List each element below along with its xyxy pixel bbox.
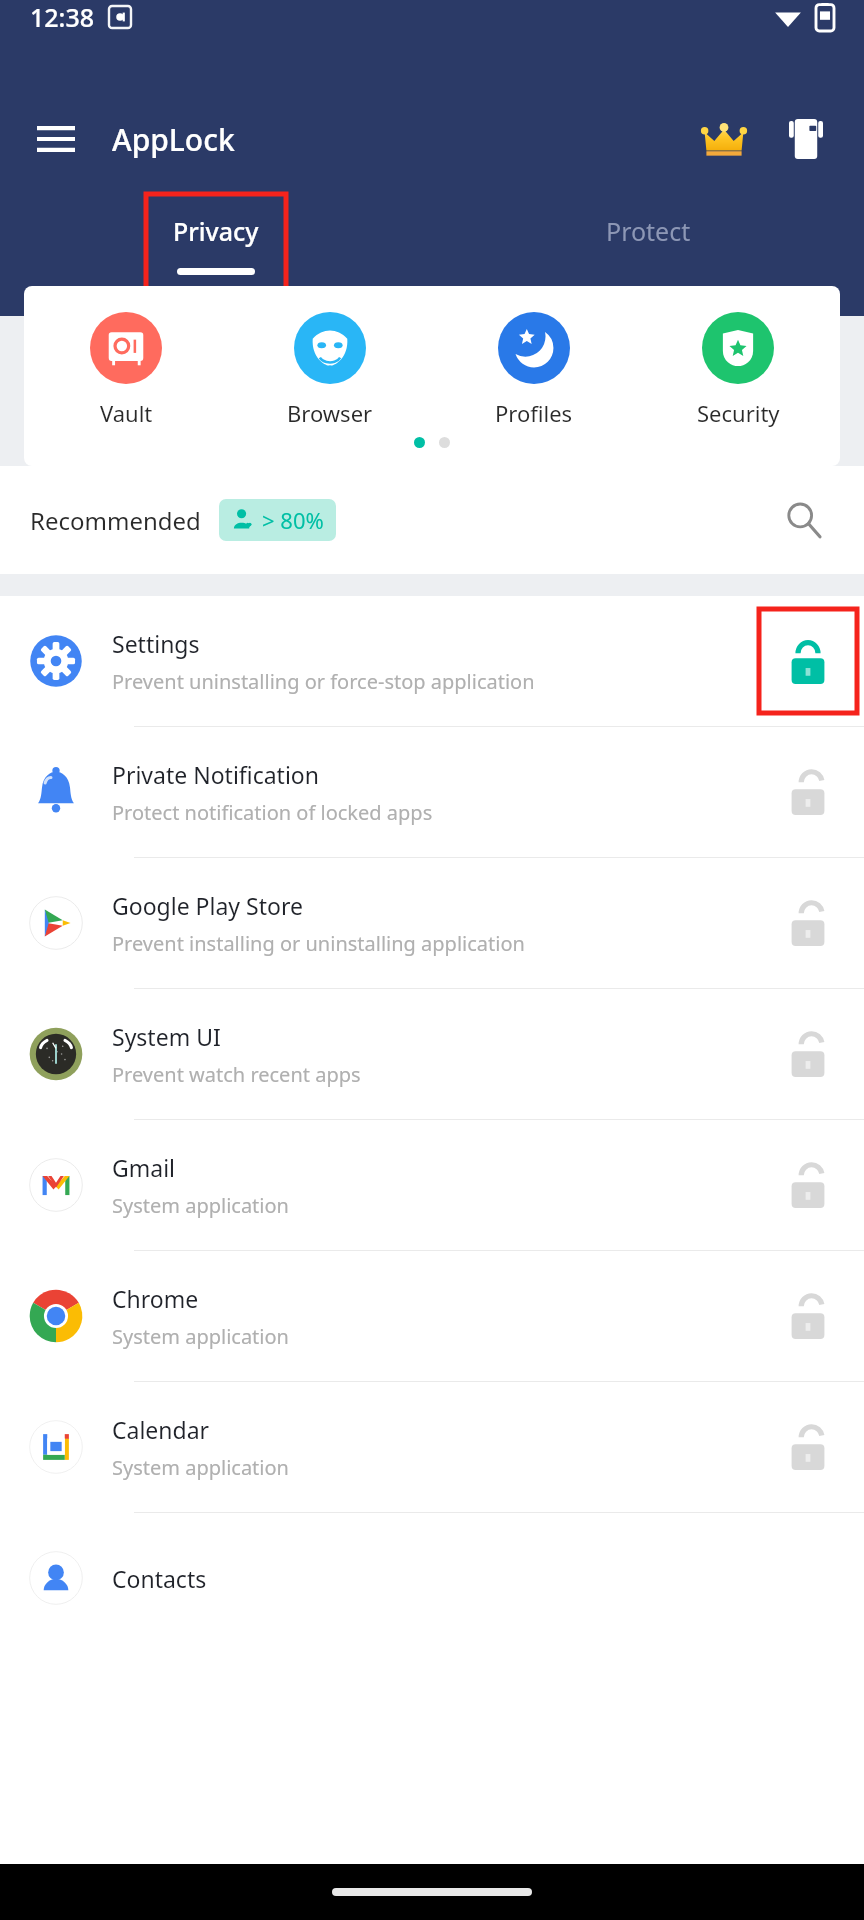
- button[interactable]: Privacy: [0, 194, 432, 316]
- staticText: Vault: [100, 398, 153, 428]
- staticText: Protect notification of locked apps: [112, 799, 433, 826]
- staticText: 12:38: [30, 0, 95, 34]
- staticText: Private Notification: [112, 759, 319, 790]
- staticText: Browser: [287, 398, 373, 428]
- staticText: Profiles: [495, 398, 573, 428]
- staticText: Prevent installing or uninstalling appli…: [112, 930, 525, 957]
- staticText: Prevent watch recent apps: [112, 1061, 361, 1088]
- button[interactable]: System UI: [0, 989, 864, 1119]
- staticText: Calendar: [112, 1414, 210, 1445]
- button[interactable]: Unlocked, tap to lock: [752, 727, 864, 857]
- button[interactable]: Google Play Store: [0, 858, 864, 988]
- staticText: Settings: [112, 628, 200, 659]
- button[interactable]: Unlocked, tap to lock: [752, 1382, 864, 1512]
- staticText: AppLock: [112, 119, 235, 160]
- button[interactable]: Unlocked, tap to lock: [752, 1120, 864, 1250]
- button[interactable]: Themes: [778, 111, 834, 167]
- button[interactable]: Security: [636, 308, 840, 432]
- button[interactable]: Gmail: [0, 1120, 864, 1250]
- button[interactable]: Settings: [0, 596, 864, 726]
- button[interactable]: Chrome: [0, 1251, 864, 1381]
- button[interactable]: Profiles: [432, 308, 636, 432]
- staticText: Chrome: [112, 1283, 199, 1314]
- staticText: > 80%: [262, 505, 324, 535]
- button[interactable]: Browser: [228, 308, 432, 432]
- staticText: Prevent uninstalling or force-stop appli…: [112, 668, 535, 695]
- button[interactable]: Locked, tap to unlock: [752, 596, 864, 726]
- staticText: Security: [697, 398, 780, 428]
- button[interactable]: Unlocked, tap to lock: [752, 858, 864, 988]
- staticText: Contacts: [112, 1563, 207, 1594]
- button[interactable]: > 80%: [231, 505, 324, 535]
- button[interactable]: VIP upgrade: [696, 111, 752, 167]
- button[interactable]: Open navigation menu: [30, 113, 82, 165]
- staticText: System application: [112, 1323, 289, 1350]
- staticText: Recommended: [30, 504, 201, 537]
- button[interactable]: Calendar: [0, 1382, 864, 1512]
- staticText: System application: [112, 1454, 289, 1481]
- button[interactable]: Search: [774, 490, 834, 550]
- staticText: System application: [112, 1192, 289, 1219]
- button[interactable]: Vault: [24, 308, 228, 432]
- button[interactable]: Unlocked, tap to lock: [752, 989, 864, 1119]
- staticText: Google Play Store: [112, 890, 303, 921]
- staticText: System UI: [112, 1021, 221, 1052]
- staticText: Protect: [606, 214, 691, 248]
- button[interactable]: Protect: [432, 194, 864, 316]
- button[interactable]: Private Notification: [0, 727, 864, 857]
- staticText: Privacy: [173, 214, 259, 248]
- button[interactable]: Unlocked, tap to lock: [752, 1251, 864, 1381]
- staticText: Gmail: [112, 1152, 176, 1183]
